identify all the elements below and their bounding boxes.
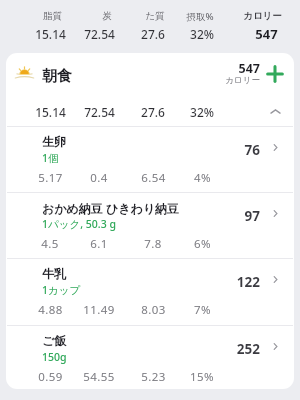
staticText: 0.4 [90,170,108,186]
staticText: 4.88 [38,302,63,318]
staticText: 72.54 [84,26,115,42]
staticText: 11.49 [83,302,115,318]
staticText: 150g [42,350,67,364]
staticText: 54.55 [83,369,115,385]
staticText: 脂質 [43,10,62,22]
button[interactable]: Add food to breakfast [263,62,287,86]
staticText: 7.8 [144,236,162,252]
staticText: 27.6 [141,104,165,120]
staticText: 4.5 [41,236,59,252]
staticText: 76 [244,141,260,159]
staticText: 15.14 [35,104,66,120]
staticText: 547 [255,25,278,43]
staticText: 生卵 [42,134,66,149]
staticText: 1個 [42,151,59,165]
staticText: 1カップ [42,283,81,297]
staticText: 6.54 [141,170,166,186]
button[interactable] [6,127,294,192]
staticText: 27.6 [141,26,165,42]
staticText: ご飯 [42,333,67,348]
button[interactable]: Collapse breakfast [264,100,286,122]
staticText: 252 [236,340,260,358]
staticText: 朝食 [42,67,72,86]
staticText: 15.14 [35,26,66,42]
staticText: 15% [190,369,214,385]
staticText: 6.1 [90,236,108,252]
staticText: 0.59 [38,369,63,385]
staticText: 6% [194,236,211,252]
staticText: おかめ納豆 ひきわり納豆 [42,200,180,216]
staticText: 炭 [102,10,112,22]
staticText: カロリー [225,75,260,86]
button[interactable] [6,193,294,258]
staticText: 5.23 [141,369,166,385]
staticText: 32% [190,26,214,42]
staticText: 8.03 [141,302,166,318]
staticText: た質 [145,10,165,22]
staticText: 32% [190,104,214,120]
staticText: 4% [194,170,211,186]
staticText: 牛乳 [42,266,66,281]
staticText: 7% [194,302,211,318]
staticText: 547 [238,60,260,77]
button[interactable] [6,259,294,324]
button[interactable] [6,326,294,391]
staticText: 1パック, 50.3 g [42,217,116,231]
staticText: 72.54 [84,104,115,120]
staticText: 摂取% [186,10,214,23]
staticText: 97 [244,207,260,225]
staticText: 122 [236,273,260,291]
staticText: 5.17 [38,170,63,186]
staticText: カロリー [243,10,282,22]
